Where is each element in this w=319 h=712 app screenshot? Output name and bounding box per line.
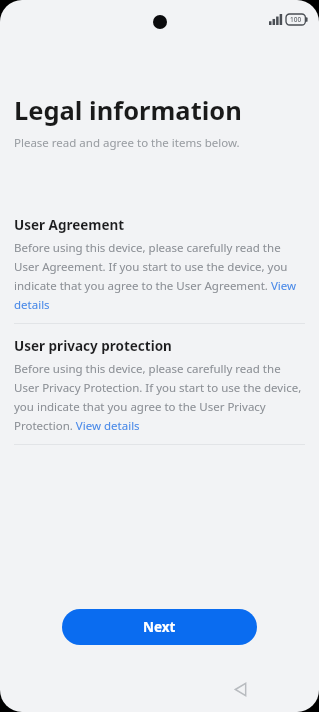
button[interactable]: User privacy protection — [0, 337, 319, 433]
staticText: User Agreement — [14, 216, 125, 234]
staticText: Please read and agree to the items below… — [14, 135, 240, 151]
staticText: Before using this device, please careful… — [14, 361, 305, 433]
staticText: Next — [143, 618, 176, 636]
staticText: User privacy protection — [14, 337, 172, 355]
button[interactable]: User Agreement — [0, 216, 319, 312]
button[interactable]: Next — [62, 609, 257, 645]
staticText: Legal information — [14, 93, 242, 128]
staticText: Before using this device, please careful… — [14, 240, 305, 312]
button[interactable]: Back — [228, 677, 252, 701]
staticText: 100 — [290, 15, 302, 24]
